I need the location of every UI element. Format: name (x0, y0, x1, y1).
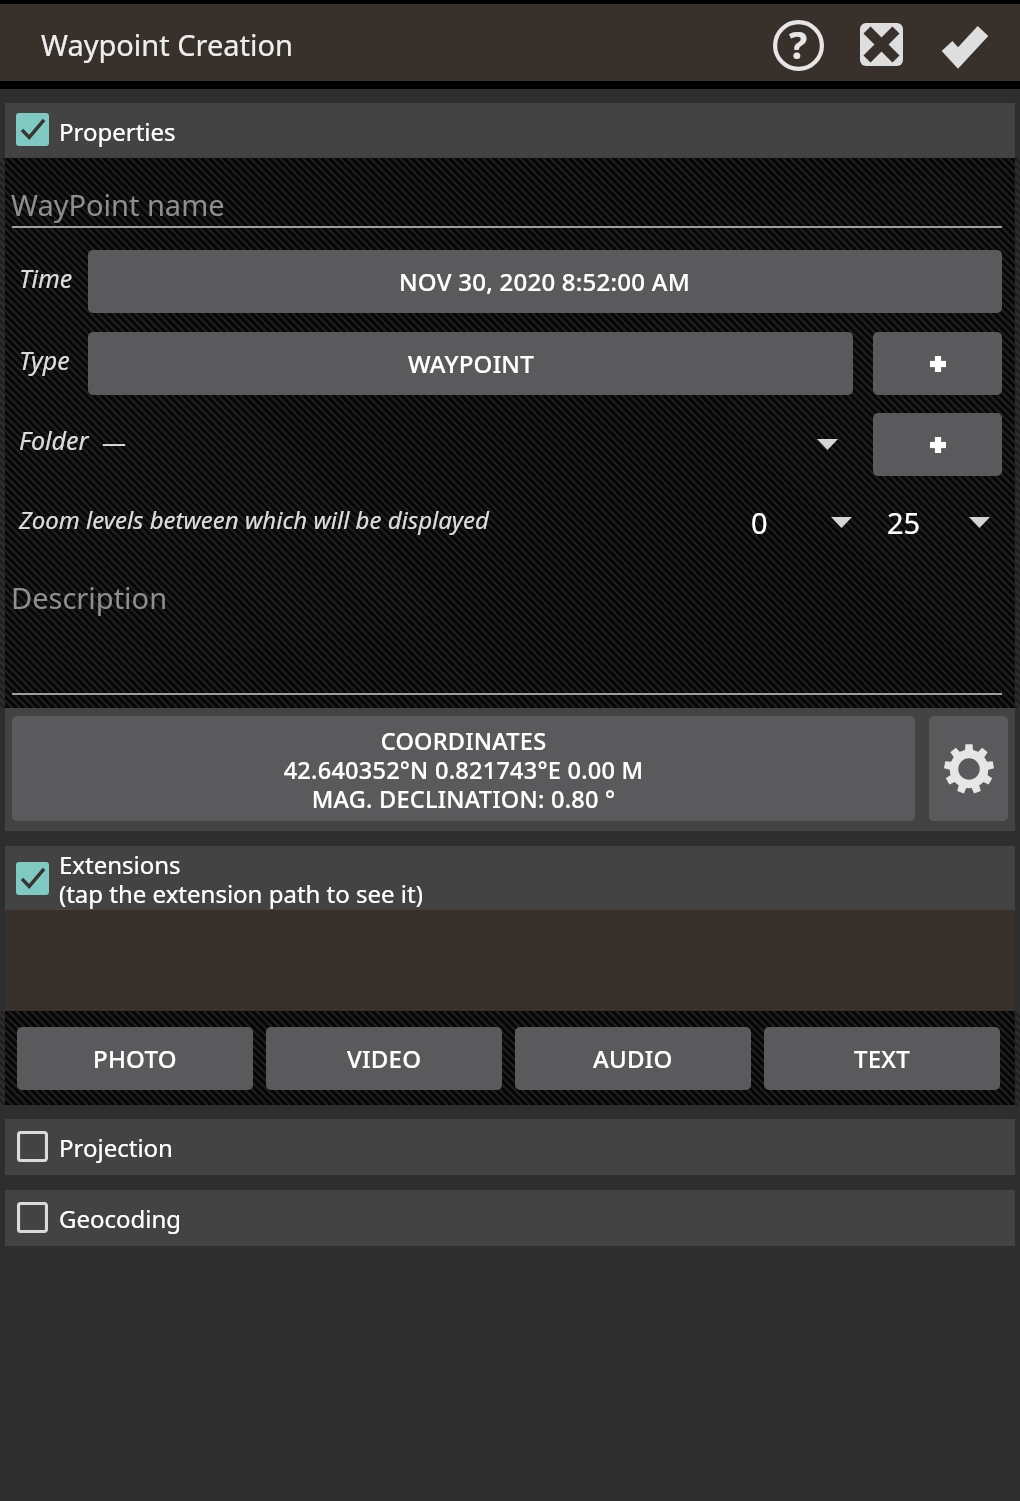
staticText: Waypoint Creation (41, 25, 294, 64)
button[interactable]: Coordinate settings (929, 716, 1008, 821)
button[interactable]: Add (873, 332, 1002, 395)
staticText: Zoom levels between which will be displa… (19, 503, 489, 536)
staticText: AUDIO (593, 1042, 673, 1075)
staticText: Folder (19, 423, 89, 457)
button[interactable]: Properties (5, 103, 1015, 158)
staticText: 25 (887, 503, 921, 542)
staticText: Geocoding (59, 1202, 182, 1235)
button[interactable]: Add (873, 413, 1002, 476)
staticText: (tap the extension path to see it) (59, 877, 423, 910)
staticText: ? (789, 18, 808, 70)
button[interactable]: VIDEO (266, 1027, 502, 1090)
button[interactable]: COORDINATES (12, 716, 915, 821)
button[interactable]: Folder (5, 413, 865, 476)
staticText: Type (19, 343, 70, 377)
staticText: Projection (59, 1131, 173, 1164)
staticText: VIDEO (347, 1042, 422, 1075)
staticText: WayPoint name (11, 185, 225, 224)
button[interactable]: Save (926, 8, 1002, 84)
staticText: 0 (751, 503, 768, 542)
staticText: Time (19, 261, 73, 295)
staticText: — (102, 425, 126, 458)
staticText: 42.640352°N 0.821743°E 0.00 M (12, 754, 915, 786)
staticText: Extensions (59, 848, 181, 881)
button[interactable]: 0 (751, 498, 852, 546)
staticText: WAYPOINT (408, 347, 534, 380)
button[interactable]: 25 (887, 498, 990, 546)
button[interactable]: Geocoding (5, 1190, 1015, 1246)
button[interactable]: PHOTO (17, 1027, 253, 1090)
button[interactable]: Projection (5, 1119, 1015, 1175)
button[interactable]: WAYPOINT (88, 332, 853, 395)
staticText: TEXT (854, 1042, 911, 1075)
staticText: MAG. DECLINATION: 0.80 ° (12, 783, 915, 815)
button[interactable]: TEXT (764, 1027, 1000, 1090)
staticText: Description (11, 578, 168, 617)
staticText: Properties (59, 115, 176, 148)
button[interactable]: Help (760, 7, 836, 83)
button[interactable]: Cancel (843, 6, 919, 82)
staticText: PHOTO (93, 1042, 177, 1075)
button[interactable]: Extensions (5, 846, 1015, 910)
button[interactable]: AUDIO (515, 1027, 751, 1090)
button[interactable]: NOV 30, 2020 8:52:00 AM (88, 250, 1002, 313)
staticText: COORDINATES (12, 725, 915, 757)
staticText: NOV 30, 2020 8:52:00 AM (399, 265, 691, 298)
